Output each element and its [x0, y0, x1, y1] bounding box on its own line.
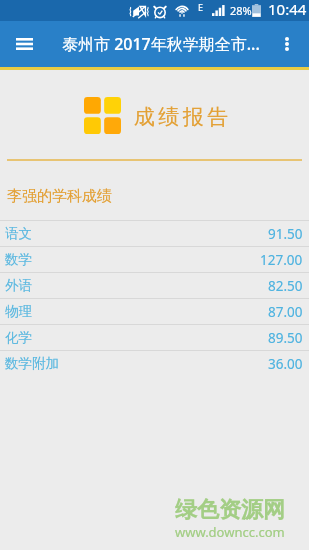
staticText: 化学 [5, 329, 32, 346]
staticText: 外语 [5, 277, 32, 294]
button[interactable]: 数学 [0, 247, 309, 272]
staticText: 数学附加 [5, 355, 59, 372]
button[interactable]: Menu [0, 21, 48, 67]
button[interactable]: More options [265, 22, 309, 66]
staticText: 10:44 [268, 0, 307, 19]
staticText: 成绩报告 [132, 104, 230, 130]
button[interactable]: 物理 [0, 299, 309, 324]
staticText: www.downcc.com [175, 523, 285, 541]
button[interactable]: 语文 [0, 221, 309, 246]
staticText: 36.00 [268, 355, 303, 373]
staticText: 87.00 [268, 303, 303, 321]
staticText: 泰州市 2017年秋学期全市... [62, 33, 260, 55]
staticText: 李强的学科成绩 [7, 187, 112, 206]
button[interactable]: 数学附加 [0, 351, 309, 376]
staticText: 绿色资源网 [175, 496, 285, 524]
staticText: 28% [230, 3, 252, 18]
staticText: 物理 [5, 303, 32, 320]
staticText: 91.50 [268, 225, 303, 243]
staticText: 数学 [5, 251, 32, 268]
staticText: E [198, 1, 204, 13]
staticText: 82.50 [268, 277, 303, 295]
staticText: 89.50 [268, 329, 303, 347]
button[interactable]: 外语 [0, 273, 309, 298]
button[interactable]: 化学 [0, 325, 309, 350]
staticText: 语文 [5, 225, 32, 242]
staticText: 127.00 [260, 251, 303, 269]
